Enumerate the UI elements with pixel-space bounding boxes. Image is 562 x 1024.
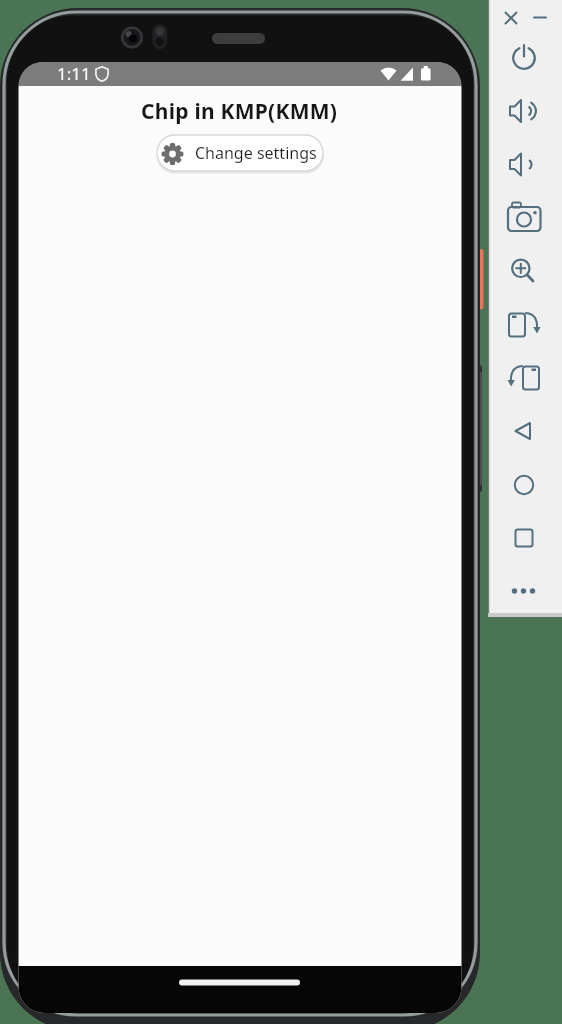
staticText: Change settings <box>195 142 317 164</box>
staticText: Chip in KMP(KMM) <box>141 97 338 125</box>
staticText: 1:11 <box>57 62 91 85</box>
